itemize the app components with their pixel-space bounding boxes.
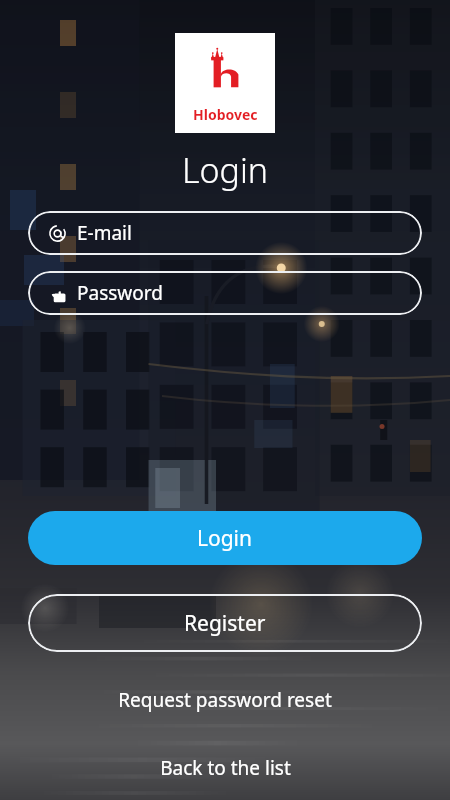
button[interactable]: Request password reset: [28, 686, 422, 714]
staticText: Hlobovec: [193, 105, 258, 124]
staticText: Request password reset: [118, 687, 332, 713]
staticText: Password: [77, 280, 163, 306]
staticText: Back to the list: [160, 755, 291, 781]
staticText: Register: [184, 609, 266, 638]
staticText: Login: [197, 524, 253, 553]
button[interactable]: Back to the list: [28, 754, 422, 782]
staticText: E-mail: [77, 220, 132, 246]
button[interactable]: Register: [28, 594, 422, 652]
button[interactable]: Login: [28, 511, 422, 565]
button[interactable]: Password field: [28, 271, 422, 315]
staticText: Login: [182, 147, 269, 193]
button[interactable]: E-mail field: [28, 211, 422, 255]
button[interactable]: Hlobovec logo: [175, 33, 275, 133]
